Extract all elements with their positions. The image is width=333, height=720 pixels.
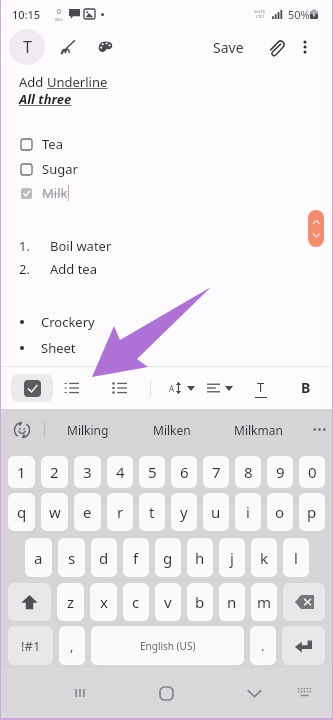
staticText: 1	[17, 462, 26, 482]
staticText: Crockery	[41, 313, 95, 331]
button[interactable]: Symbols	[8, 626, 53, 665]
button[interactable]: 5	[139, 456, 165, 488]
button[interactable]: More options	[292, 34, 318, 60]
button[interactable]: p	[299, 493, 325, 531]
staticText: g	[163, 548, 173, 568]
staticText: q	[17, 502, 27, 522]
staticText: 2.	[19, 260, 30, 278]
button[interactable]: Sheet	[0, 338, 333, 358]
staticText: v	[164, 592, 172, 612]
button[interactable]: g	[155, 538, 181, 577]
button[interactable]: Sugar	[0, 159, 333, 179]
button[interactable]: Milk	[0, 183, 333, 203]
button[interactable]: Milkman	[228, 414, 289, 446]
staticText: u	[211, 502, 221, 522]
button[interactable]: j	[219, 538, 245, 577]
button[interactable]: b	[187, 583, 213, 621]
staticText: Milk	[42, 184, 68, 202]
button[interactable]: 7	[203, 456, 229, 488]
button[interactable]: Text mode	[9, 29, 45, 65]
button[interactable]: f	[123, 538, 149, 577]
staticText: w	[49, 502, 61, 522]
button[interactable]: 6	[171, 456, 197, 488]
button[interactable]: 3	[74, 456, 101, 488]
staticText: 0	[57, 7, 62, 17]
button[interactable]: Recents	[58, 668, 102, 718]
button[interactable]: Underline	[246, 366, 276, 409]
button[interactable]: Save	[208, 33, 249, 62]
staticText: c	[132, 592, 140, 612]
staticText: f	[133, 548, 139, 568]
button[interactable]: Handwriting	[52, 32, 82, 62]
button[interactable]: v	[155, 583, 181, 621]
button[interactable]: Font size	[162, 366, 202, 409]
button[interactable]: q	[8, 493, 35, 531]
button[interactable]: More suggestions	[305, 409, 333, 450]
button[interactable]: n	[219, 583, 245, 621]
button[interactable]: Palette	[91, 32, 121, 62]
staticText: T	[257, 378, 265, 396]
button[interactable]: Scroll	[308, 210, 324, 247]
button[interactable]: i	[235, 493, 261, 531]
button[interactable]: 2.	[0, 259, 333, 279]
button[interactable]: Backspace	[283, 583, 325, 621]
button[interactable]: Attach	[260, 32, 290, 62]
button[interactable]: Home	[144, 668, 188, 718]
button[interactable]: e	[74, 493, 101, 531]
button[interactable]: ,	[59, 626, 85, 665]
button[interactable]: Add	[19, 73, 108, 91]
staticText: i	[246, 502, 250, 522]
staticText: n	[227, 592, 237, 612]
button[interactable]: r	[107, 493, 133, 531]
button[interactable]: a	[25, 538, 52, 577]
button[interactable]: z	[57, 583, 84, 621]
staticText: VoLTE	[254, 9, 266, 14]
button[interactable]: Milken	[147, 414, 197, 446]
button[interactable]: x	[90, 583, 117, 621]
button[interactable]: 0	[299, 456, 325, 488]
button[interactable]: y	[171, 493, 197, 531]
button[interactable]: Checklist	[11, 374, 53, 402]
staticText: 10:15	[12, 7, 41, 22]
button[interactable]: Emoji	[0, 409, 44, 450]
button[interactable]: 1	[8, 456, 35, 488]
button[interactable]: 2	[41, 456, 68, 488]
button[interactable]: c	[123, 583, 149, 621]
button[interactable]: .	[250, 626, 276, 665]
button[interactable]: 9	[267, 456, 293, 488]
staticText: l	[294, 548, 298, 568]
button[interactable]: k	[251, 538, 277, 577]
staticText: 50%	[288, 7, 310, 22]
button[interactable]: l	[283, 538, 309, 577]
staticText: 1.	[19, 237, 30, 255]
button[interactable]: u	[203, 493, 229, 531]
button[interactable]: w	[41, 493, 68, 531]
staticText: o	[275, 502, 285, 522]
button[interactable]: m	[251, 583, 277, 621]
button[interactable]: Bold	[291, 366, 321, 409]
button[interactable]: o	[267, 493, 293, 531]
button[interactable]: English (US)	[91, 626, 244, 665]
button[interactable]: Alignment	[199, 366, 241, 409]
button[interactable]: Hide keyboard	[283, 668, 327, 718]
button[interactable]: Bulleted list	[104, 366, 134, 409]
button[interactable]: 4	[107, 456, 133, 488]
button[interactable]: Milking	[61, 414, 115, 446]
button[interactable]: All three	[19, 90, 72, 108]
staticText: .	[261, 637, 265, 655]
button[interactable]: 1.	[0, 236, 333, 256]
button[interactable]: Numbered list	[56, 366, 86, 409]
button[interactable]: Enter	[282, 626, 325, 665]
button[interactable]: Tea	[0, 134, 333, 154]
button[interactable]: t	[139, 493, 165, 531]
button[interactable]: d	[91, 538, 117, 577]
button[interactable]: Shift	[8, 583, 51, 621]
button[interactable]: Back	[232, 668, 276, 718]
button[interactable]: s	[58, 538, 85, 577]
staticText: Save	[213, 38, 244, 57]
staticText: Milking	[67, 422, 109, 438]
staticText: s	[68, 548, 76, 568]
button[interactable]: Crockery	[0, 312, 333, 332]
button[interactable]: h	[187, 538, 213, 577]
button[interactable]: 8	[235, 456, 261, 488]
